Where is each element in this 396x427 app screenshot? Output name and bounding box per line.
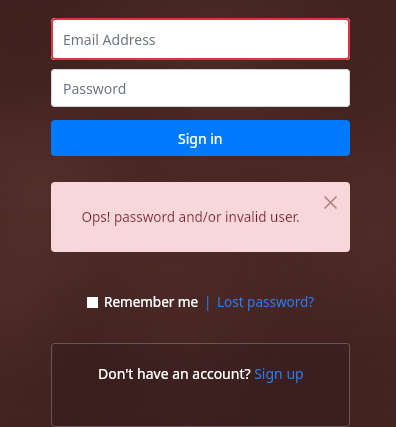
button[interactable]: Don't have an account? Sign up	[51, 343, 350, 427]
staticText: Email Address	[63, 30, 156, 49]
button[interactable]: Password	[51, 69, 350, 107]
staticText: Sign in	[178, 129, 223, 148]
staticText: Lost password?	[217, 293, 315, 311]
button[interactable]: Lost password?	[217, 293, 315, 311]
button[interactable]: Close alert	[319, 191, 341, 213]
button[interactable]: Remember me	[87, 293, 199, 311]
staticText: Don't have an account? Sign up	[98, 364, 304, 383]
staticText: Remember me	[104, 293, 199, 311]
staticText: Ops! password and/or invalid user.	[81, 208, 300, 226]
button[interactable]: Email Address	[51, 18, 350, 60]
button[interactable]: Sign in	[51, 120, 350, 156]
staticText: |	[204, 293, 212, 311]
staticText: Password	[63, 79, 127, 98]
